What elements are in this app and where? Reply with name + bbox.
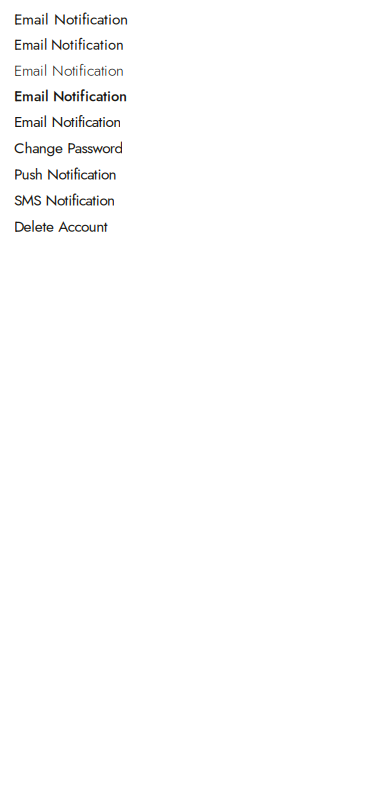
staticText: Email Notification — [14, 34, 124, 55]
staticText: Change Password — [14, 137, 123, 159]
staticText: Email Notification — [14, 111, 121, 133]
staticText: Delete Account — [14, 215, 108, 237]
staticText: Email Notification — [14, 8, 128, 30]
staticText: SMS Notification — [14, 189, 115, 211]
staticText: Push Notification — [14, 163, 117, 185]
staticText: Email Notification — [14, 59, 124, 81]
staticText: Email Notification — [14, 85, 127, 107]
